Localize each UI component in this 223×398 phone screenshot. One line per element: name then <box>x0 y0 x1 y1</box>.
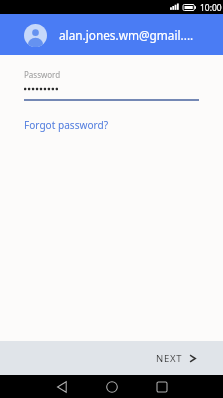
button[interactable]: Recent apps <box>149 375 175 398</box>
staticText: NEXT <box>156 352 183 365</box>
button[interactable]: Forgot password? <box>24 118 109 132</box>
button[interactable]: Home <box>99 375 125 398</box>
button[interactable]: Back <box>49 375 75 398</box>
button[interactable]: NEXT <box>156 352 196 365</box>
staticText: alan.jones.wm@gmail.... <box>59 27 194 43</box>
staticText: Password <box>24 69 61 80</box>
button[interactable]: alan.jones.wm@gmail.... <box>0 14 223 55</box>
staticText: 10:00 <box>200 2 222 14</box>
